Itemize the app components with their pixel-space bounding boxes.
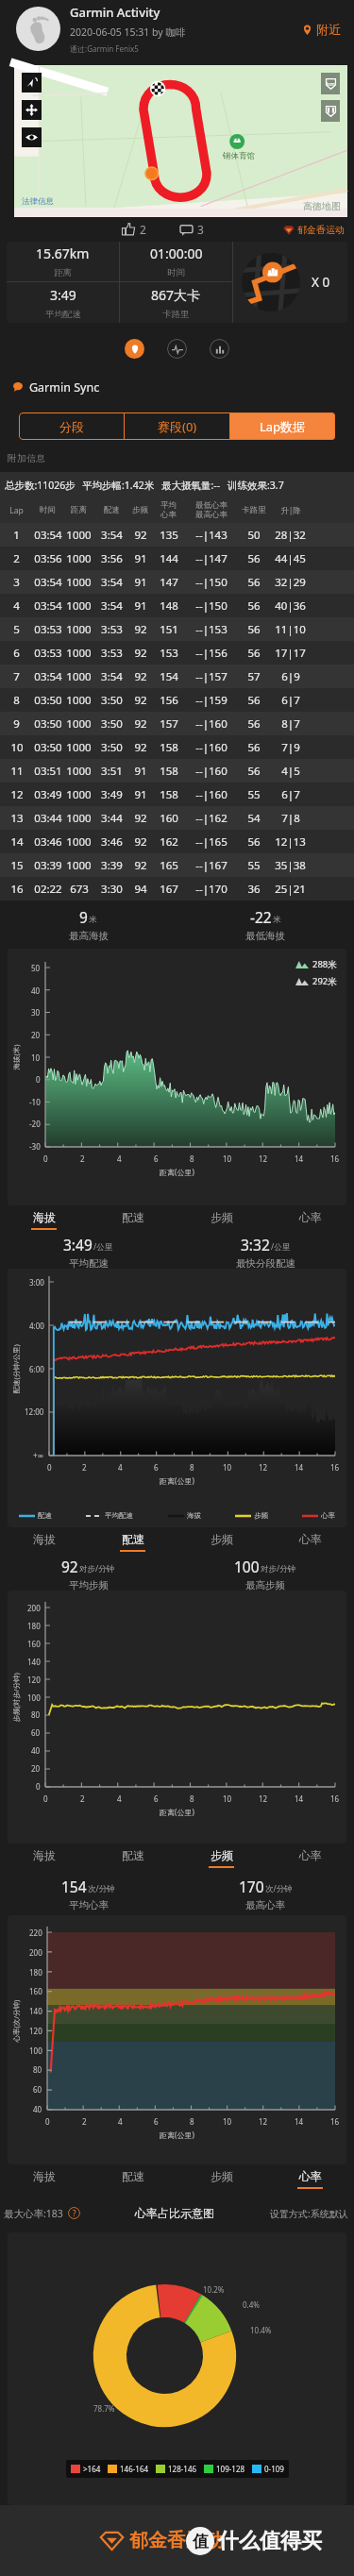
button[interactable]: 6 — [0, 641, 354, 665]
button[interactable]: 12 — [0, 783, 354, 806]
staticText: 292米 — [312, 975, 337, 987]
staticText: 146-164 — [120, 2464, 149, 2474]
staticText: 60 — [33, 2084, 42, 2095]
staticText: 109-128 — [216, 2464, 245, 2474]
button[interactable]: 3 — [177, 222, 207, 237]
button[interactable]: Scale — [321, 73, 340, 94]
staticText: 14 — [295, 1793, 304, 1804]
button[interactable]: 心率 — [265, 1844, 354, 1873]
button[interactable]: 11 — [0, 759, 354, 783]
staticText: 92 — [134, 669, 147, 684]
staticText: 1000 — [66, 787, 92, 802]
button[interactable]: 8 — [0, 688, 354, 712]
staticText: 673 — [70, 882, 89, 897]
button[interactable]: 3:49 — [7, 282, 119, 323]
button[interactable]: 心率 — [265, 2164, 354, 2194]
staticText: 12|13 — [275, 834, 306, 850]
staticText: 钢体育馆 — [223, 151, 255, 161]
button[interactable]: Pause — [321, 100, 340, 122]
button[interactable]: Pan — [22, 100, 42, 120]
button[interactable]: 海拔 — [0, 2164, 88, 2194]
staticText: --|150 — [195, 598, 228, 614]
staticText: 步频 — [211, 2169, 233, 2183]
button[interactable]: 分段 — [19, 412, 124, 440]
button[interactable]: 3 — [0, 570, 354, 594]
button[interactable]: Map view — [125, 339, 144, 359]
button[interactable]: 赛段(0) — [125, 412, 229, 440]
button[interactable]: 心率 — [265, 1205, 354, 1235]
button[interactable]: 01:00:00 — [120, 242, 232, 281]
button[interactable]: 郁金香运动 — [100, 2529, 224, 2552]
button[interactable]: Badges — [233, 242, 347, 323]
staticText: 距离 — [71, 505, 87, 515]
button[interactable]: Statistics — [210, 339, 229, 359]
button[interactable]: 步频 — [177, 1205, 265, 1235]
button[interactable]: 16 — [0, 877, 354, 901]
staticText: Garmin Activity — [70, 4, 160, 21]
staticText: 配速 — [122, 1210, 144, 1224]
button[interactable]: 配速 — [88, 1205, 177, 1235]
staticText: 最低海拔 — [245, 930, 285, 942]
button[interactable]: 海拔 — [0, 1205, 88, 1235]
staticText: 36 — [247, 882, 261, 897]
button[interactable]: 9 — [0, 712, 354, 735]
staticText: 最低心率 最高心率 — [195, 500, 228, 520]
staticText: 100 — [29, 2046, 42, 2056]
button[interactable]: 步频 — [177, 1527, 265, 1557]
staticText: -10 — [29, 1097, 41, 1107]
button[interactable]: 步频 — [177, 2164, 265, 2194]
button[interactable]: 2 — [119, 222, 149, 237]
staticText: 3:54 — [101, 669, 123, 684]
staticText: 92 — [134, 622, 147, 637]
staticText: 147 — [160, 575, 178, 590]
button[interactable]: Route map — [14, 65, 347, 217]
staticText: 35|38 — [275, 858, 306, 873]
staticText: 148 — [160, 598, 178, 614]
staticText: 153 — [160, 646, 178, 661]
button[interactable]: 郁金香运动 — [281, 224, 346, 236]
button[interactable]: Help — [68, 2207, 80, 2219]
button[interactable]: View — [22, 127, 42, 147]
button[interactable]: 配速 — [88, 1527, 177, 1557]
staticText: 心率 — [321, 1511, 335, 1520]
staticText: 10 — [223, 2116, 232, 2127]
staticText: 154 — [61, 1877, 87, 1896]
button[interactable]: 13 — [0, 806, 354, 830]
button[interactable]: 步频 — [177, 1844, 265, 1873]
button[interactable]: 配速 — [88, 1844, 177, 1873]
staticText: 12 — [259, 1153, 268, 1164]
staticText: 3:56 — [101, 551, 123, 566]
staticText: 什么值得买 — [218, 2528, 322, 2554]
button[interactable]: 15 — [0, 853, 354, 877]
staticText: --|162 — [195, 811, 228, 826]
button[interactable]: 4 — [0, 594, 354, 617]
staticText: --|167 — [195, 858, 228, 873]
staticText: 0-109 — [264, 2464, 284, 2474]
button[interactable]: Heart rate — [167, 339, 187, 359]
button[interactable]: 867大卡 — [120, 282, 232, 323]
button[interactable]: 附近 — [298, 18, 345, 41]
button[interactable]: 15.67km — [7, 242, 119, 281]
button[interactable]: 2 — [0, 547, 354, 570]
button[interactable]: 5 — [0, 617, 354, 641]
button[interactable]: 配速 — [88, 2164, 177, 2194]
button[interactable]: Lap数据 — [230, 412, 335, 440]
staticText: 平均步幅:1.42米 — [82, 479, 155, 492]
staticText: 16 — [330, 2116, 340, 2127]
button[interactable]: Profile — [16, 7, 60, 51]
button[interactable]: Locate — [22, 73, 42, 93]
button[interactable]: 1 — [0, 523, 354, 547]
staticText: 20 — [31, 1030, 41, 1040]
button[interactable]: Garmin Sync — [13, 374, 354, 400]
button[interactable]: 海拔 — [0, 1844, 88, 1873]
button[interactable]: 海拔 — [0, 1527, 88, 1557]
button[interactable]: 7 — [0, 665, 354, 688]
staticText: 135 — [160, 528, 178, 543]
button[interactable]: 14 — [0, 830, 354, 853]
button[interactable]: 10 — [0, 735, 354, 759]
button[interactable]: 心率 — [265, 1527, 354, 1557]
staticText: 距离(公里) — [160, 1167, 194, 1177]
staticText: 5 — [13, 622, 20, 637]
staticText: 140 — [29, 2006, 42, 2016]
staticText: 92 — [134, 716, 147, 732]
